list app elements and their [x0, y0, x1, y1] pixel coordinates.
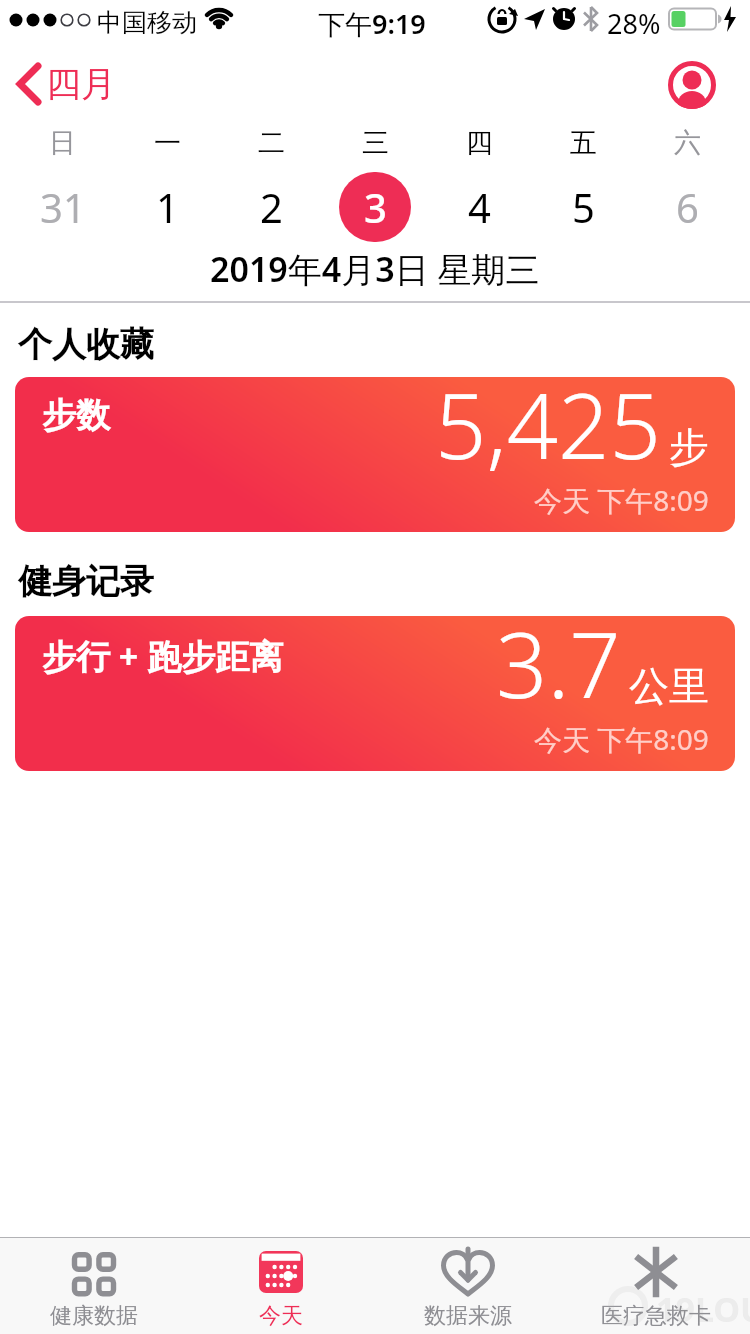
staticText: 医疗急救卡	[601, 1302, 711, 1330]
staticText: 四	[466, 126, 493, 160]
button[interactable]: 5	[531, 172, 635, 242]
staticText: 二	[258, 126, 285, 160]
staticText: 四月	[46, 62, 116, 106]
staticText: 健康数据	[50, 1302, 138, 1330]
staticText: 中国移动	[97, 7, 197, 38]
staticText: 公里	[629, 661, 709, 711]
button[interactable]: 步行 + 跑步距离	[15, 616, 735, 771]
staticText: 今天	[259, 1302, 303, 1330]
staticText: 六	[674, 126, 701, 160]
staticText: 今天 下午8:09	[534, 720, 709, 758]
staticText: 3	[364, 180, 387, 234]
button[interactable]: 数据来源	[374, 1238, 562, 1334]
staticText: 五	[570, 126, 597, 160]
staticText: 日	[49, 126, 76, 160]
button[interactable]	[666, 59, 718, 111]
staticText: 19LOU	[656, 1286, 750, 1332]
staticText: 5	[572, 180, 595, 234]
staticText: 31	[40, 180, 86, 234]
staticText: 28%	[607, 5, 661, 42]
button[interactable]: 4	[427, 172, 531, 242]
button[interactable]: 3	[323, 172, 427, 242]
staticText: 数据来源	[424, 1302, 512, 1330]
staticText: 2	[260, 180, 283, 234]
staticText: 6	[676, 180, 699, 234]
button[interactable]: 医疗急救卡	[562, 1238, 750, 1334]
button[interactable]: 步数	[15, 377, 735, 532]
staticText: 4	[468, 180, 491, 234]
button[interactable]: 31	[10, 172, 115, 242]
staticText: 步	[669, 422, 709, 472]
button[interactable]: 1	[115, 172, 219, 242]
staticText: 健身记录	[18, 560, 154, 603]
button[interactable]: 健康数据	[0, 1238, 187, 1334]
staticText: 步数	[42, 394, 110, 437]
staticText: 5,425	[435, 377, 661, 486]
button[interactable]: 四月	[14, 52, 116, 116]
staticText: 一	[154, 126, 181, 160]
staticText: 3.7	[496, 616, 621, 725]
staticText: 步行 + 跑步距离	[42, 633, 284, 679]
staticText: 下午9:19	[318, 5, 426, 42]
staticText: 个人收藏	[18, 323, 154, 366]
staticText: 三	[362, 126, 389, 160]
button[interactable]: 2	[219, 172, 323, 242]
button[interactable]: 6	[635, 172, 739, 242]
staticText: 2019年4月3日 星期三	[210, 246, 540, 288]
button[interactable]: 今天	[187, 1238, 374, 1334]
staticText: 1	[156, 180, 179, 234]
staticText: 今天 下午8:09	[534, 481, 709, 519]
